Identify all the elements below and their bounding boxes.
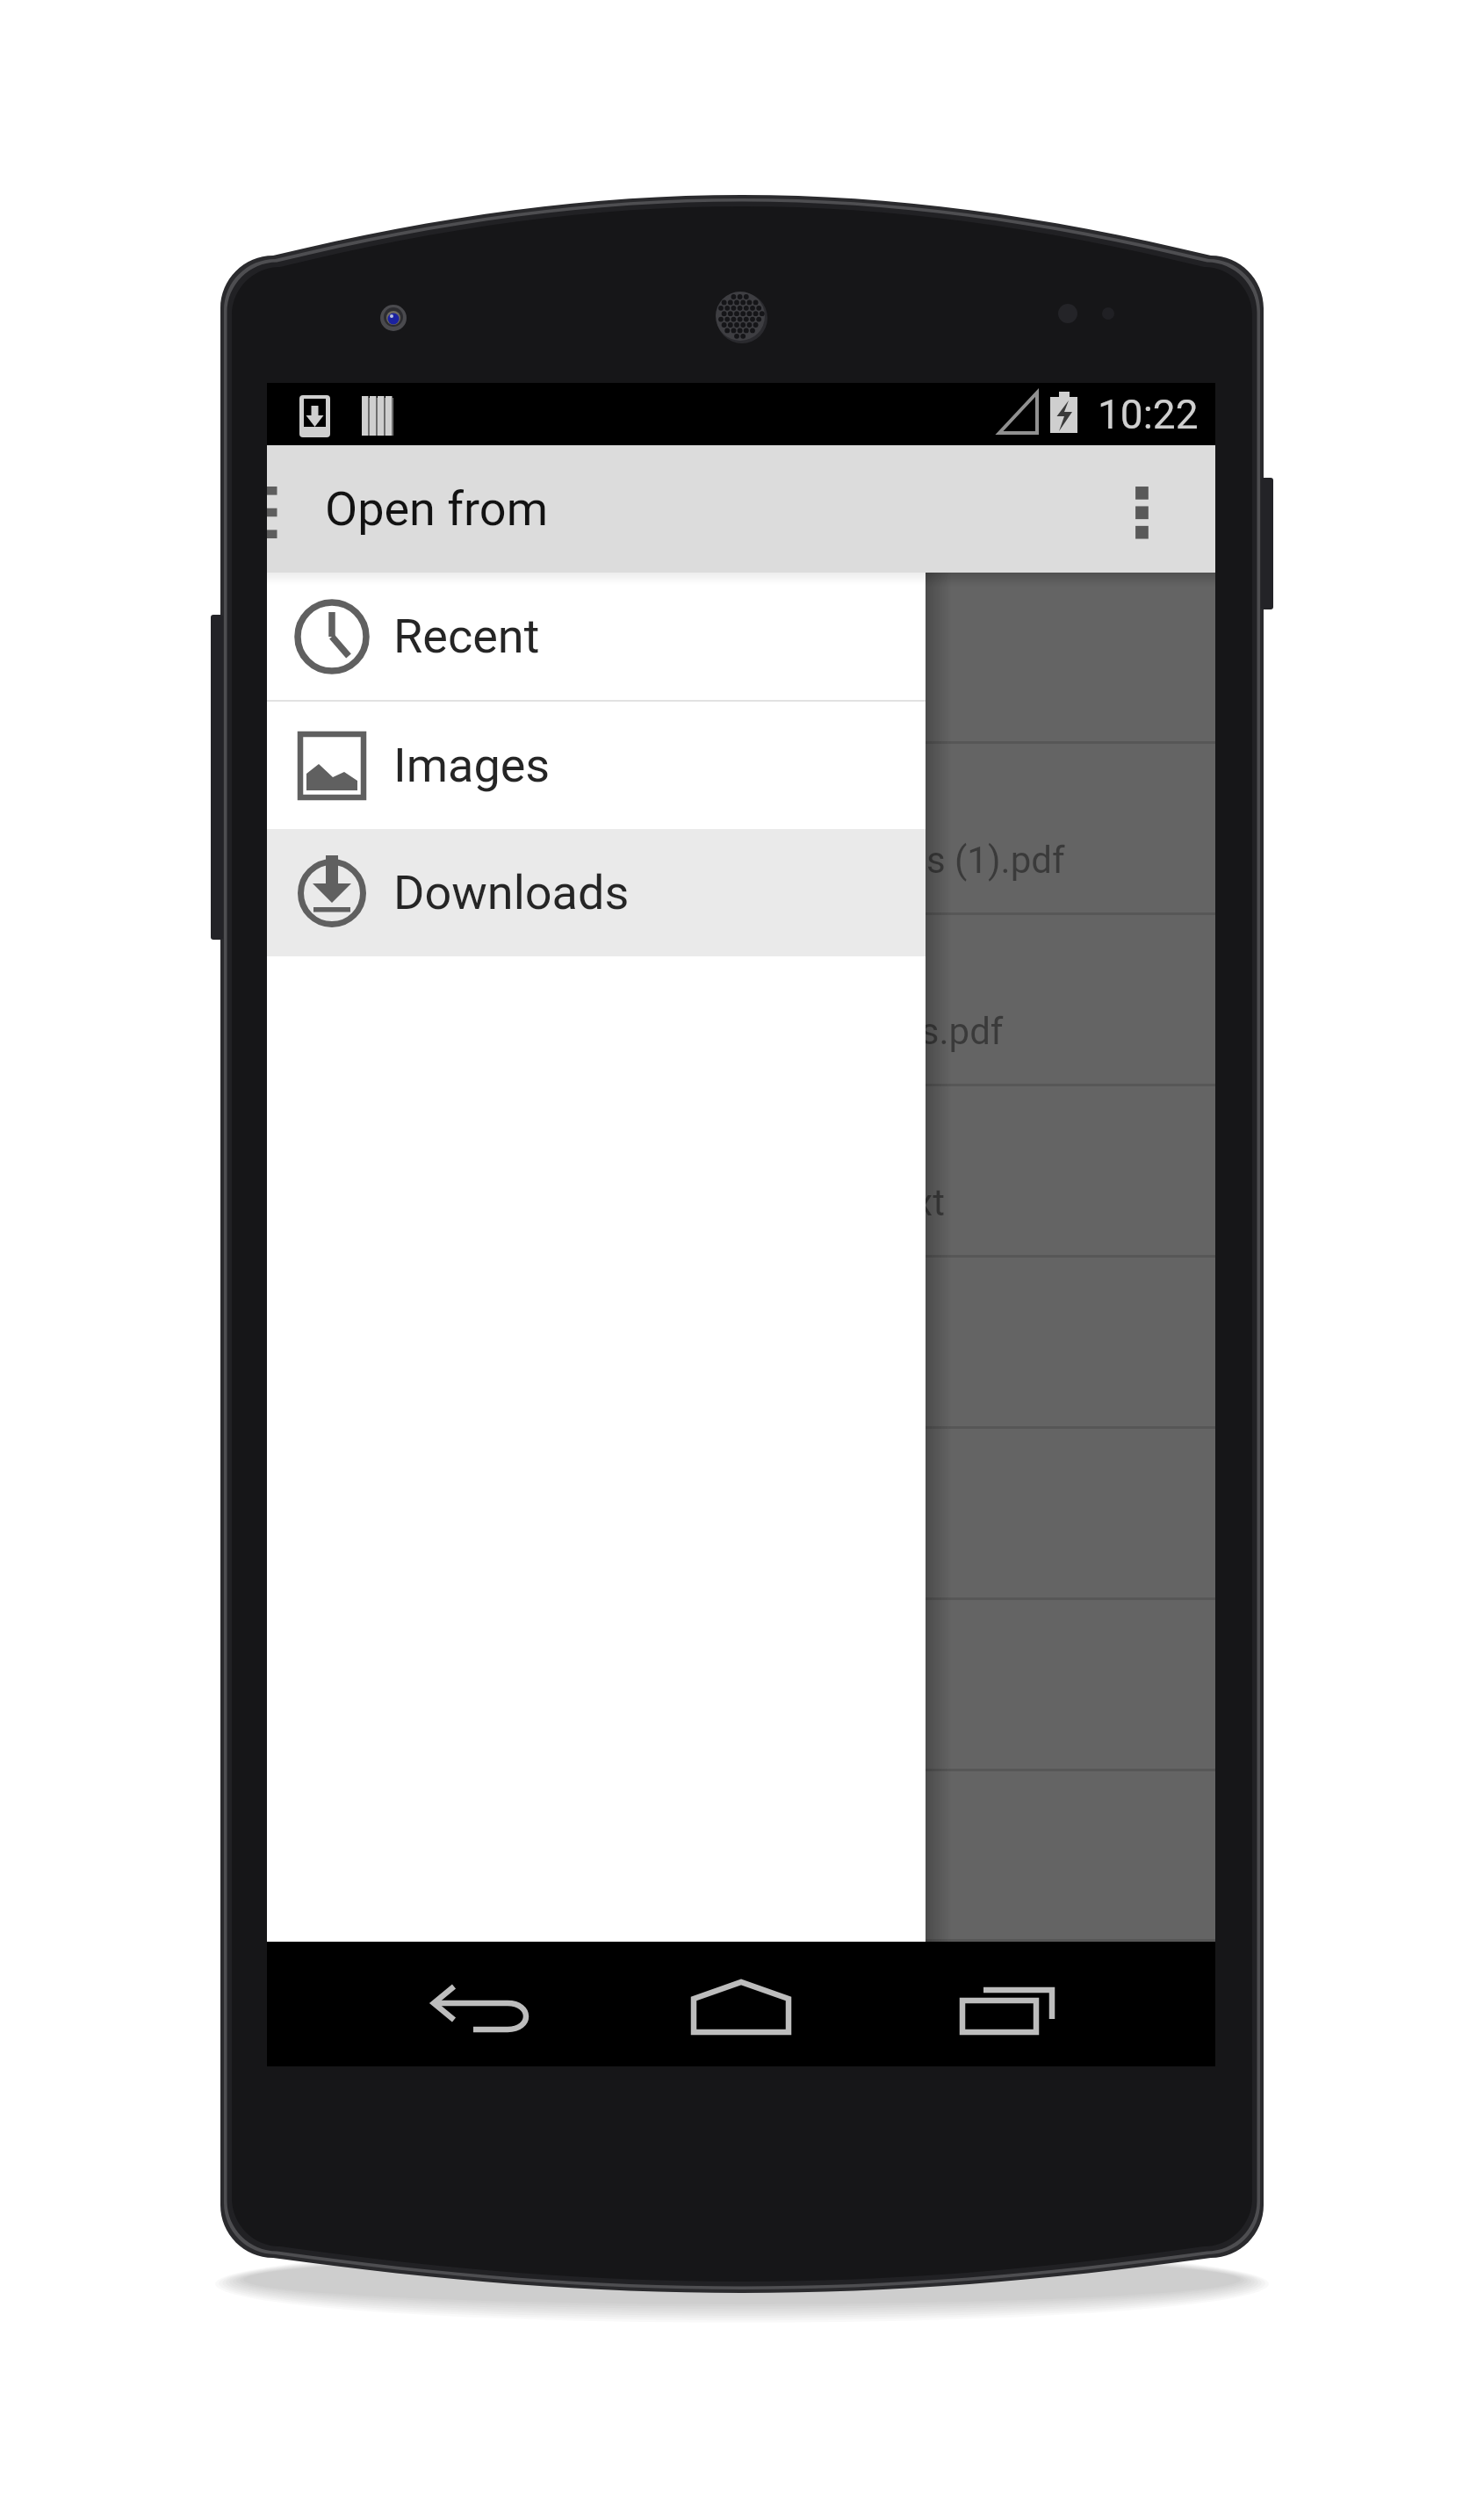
staticText: Recent (393, 609, 540, 664)
button[interactable]: Downloads (267, 829, 926, 956)
button[interactable]: Home (636, 1942, 846, 2066)
staticText: meeting_notes_2014_draft.txt (457, 1181, 945, 1224)
staticText: Quarterly_sales_team_figures.pdf (457, 1010, 1004, 1053)
button[interactable]: Recent apps (902, 1942, 1113, 2066)
button[interactable]: Recent (267, 573, 926, 700)
staticText: Images (393, 738, 551, 793)
button[interactable]: Images (267, 702, 926, 829)
staticText: Downloads (393, 865, 630, 920)
staticText: Open from (325, 481, 549, 537)
staticText: 10:22 (1098, 391, 1199, 438)
button[interactable]: More options (1089, 445, 1215, 573)
button[interactable]: Back (372, 1942, 583, 2066)
staticText: Android_UI_design_guidelines (1).pdf (457, 839, 1065, 882)
